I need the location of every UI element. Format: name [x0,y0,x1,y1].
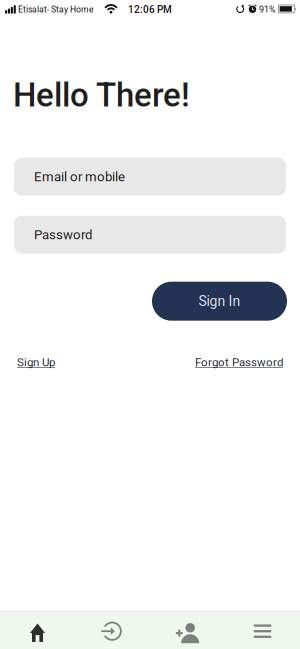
button[interactable]: Forgot Password [195,356,283,369]
staticText: Sign Up [17,356,55,369]
button[interactable]: Password [14,216,286,254]
staticText: Hello There! [13,76,190,115]
button[interactable]: Sign Up [17,356,55,369]
staticText: Sign In [198,293,240,309]
button[interactable] [225,612,300,649]
staticText: Forgot Password [195,356,283,369]
staticText: Email or mobile [34,169,125,184]
button[interactable]: Email or mobile [14,158,286,196]
staticText: 91% [259,4,276,15]
button[interactable] [150,612,225,649]
staticText: Etisalat- Stay Home [18,4,94,15]
staticText: Password [34,227,92,242]
button[interactable] [75,612,150,649]
button[interactable]: Sign In [152,282,287,321]
button[interactable] [0,612,75,649]
staticText: 12:06 PM [128,4,172,15]
